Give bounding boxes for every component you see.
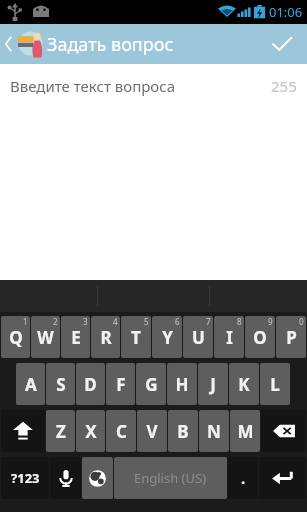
staticText: 01:06 [269,3,303,21]
button[interactable]: Voice input [50,457,81,499]
staticText: 3 [83,316,88,327]
staticText: O [253,326,267,349]
button[interactable]: W [31,316,60,358]
button[interactable]: Enter [259,457,306,499]
staticText: ?123 [11,469,40,487]
staticText: Задать вопрос [47,32,174,57]
button[interactable]: F [106,363,135,405]
button[interactable]: . [228,457,258,499]
staticText: 1 [23,316,28,327]
staticText: 255 [271,76,297,96]
button[interactable]: X [76,410,105,452]
staticText: 5 [144,316,149,327]
button[interactable]: H [167,363,197,405]
staticText: X [85,420,97,443]
button[interactable]: G [136,363,166,405]
button[interactable]: D [76,363,105,405]
button[interactable]: U [183,316,213,358]
button[interactable]: Change language [82,457,113,499]
staticText: W [37,326,54,349]
button[interactable]: O [245,316,275,358]
staticText: U [192,326,205,349]
staticText: R [100,326,112,349]
staticText: 8 [237,316,242,327]
staticText: . [241,468,246,488]
button[interactable]: B [168,410,198,452]
staticText: T [131,326,141,349]
staticText: Введите текст вопроса [10,76,271,96]
staticText: E [71,326,81,349]
button[interactable]: Shift [1,410,45,452]
button[interactable]: S [46,363,75,405]
button[interactable]: Backspace [261,410,306,452]
staticText: N [207,420,221,443]
staticText: Z [56,420,66,443]
button[interactable]: English (US) [114,457,227,499]
staticText: S [56,373,66,396]
button[interactable]: ?123 [1,457,49,499]
button[interactable]: Y [152,316,182,358]
button[interactable]: Введите текст вопроса [0,64,307,108]
staticText: P [286,326,297,349]
staticText: F [116,373,126,396]
button[interactable]: Done [257,24,307,64]
staticText: 9 [268,316,273,327]
staticText: A [25,373,37,396]
staticText: English (US) [134,469,207,487]
staticText: C [116,420,127,443]
staticText: I [226,326,233,349]
staticText: 2 [53,316,58,327]
button[interactable]: J [198,363,228,405]
staticText: G [145,373,158,396]
staticText: V [146,420,158,443]
staticText: L [270,373,280,396]
button[interactable]: M [230,410,260,452]
staticText: 4 [113,316,118,327]
button[interactable]: Q [1,316,30,358]
button[interactable]: E [61,316,90,358]
staticText: M [237,420,254,443]
button[interactable]: Back [0,24,51,64]
button[interactable]: L [260,363,290,405]
staticText: 0 [299,316,304,327]
staticText: Y [162,326,173,349]
button[interactable]: K [229,363,259,405]
staticText: H [175,373,189,396]
staticText: D [84,373,97,396]
button[interactable]: A [16,363,45,405]
button[interactable]: C [106,410,136,452]
button[interactable]: P [276,316,306,358]
staticText: 6 [175,316,180,327]
staticText: K [238,373,250,396]
button[interactable]: N [199,410,229,452]
button[interactable]: V [137,410,167,452]
staticText: 7 [206,316,211,327]
button[interactable]: R [91,316,120,358]
button[interactable]: I [214,316,244,358]
staticText: Q [9,326,23,349]
staticText: B [177,420,189,443]
button[interactable]: T [121,316,151,358]
button[interactable]: Z [46,410,75,452]
staticText: J [210,373,216,396]
